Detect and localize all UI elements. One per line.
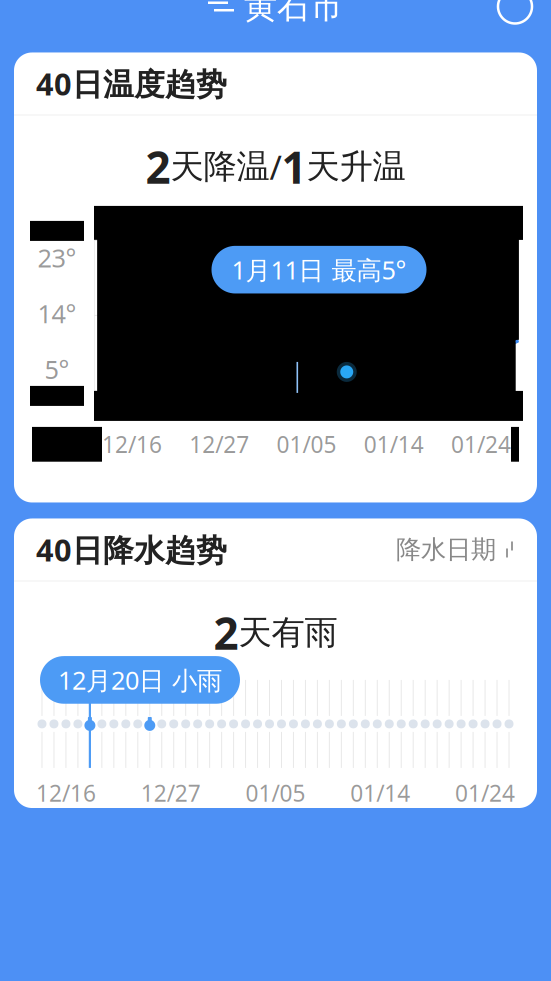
staticText: 40日降水趋势 bbox=[36, 529, 227, 570]
staticText: 12/16 bbox=[36, 778, 96, 808]
button[interactable]: 降水日期 bbox=[396, 528, 515, 571]
staticText: 12/27 bbox=[189, 429, 249, 459]
staticText: 2 bbox=[213, 603, 238, 662]
staticText: 40日温度趋势 bbox=[36, 63, 227, 104]
staticText: / bbox=[269, 145, 281, 189]
staticText: 23° bbox=[37, 241, 76, 274]
staticText: 14° bbox=[37, 297, 76, 330]
staticText: 12月20日 小雨 bbox=[58, 663, 222, 697]
staticText: 12/27 bbox=[141, 778, 201, 808]
staticText: 01/24 bbox=[451, 429, 511, 459]
staticText: 天升温 bbox=[306, 146, 405, 187]
staticText: 01/24 bbox=[455, 778, 515, 808]
staticText: 1月11日 最高5° bbox=[231, 253, 406, 286]
staticText: 黄石市 bbox=[244, 0, 343, 27]
staticText: 2 bbox=[145, 137, 170, 196]
staticText: 5° bbox=[44, 352, 69, 386]
button[interactable]: 刷新 bbox=[491, 0, 539, 30]
staticText: 天降温 bbox=[170, 146, 269, 187]
staticText: 天有雨 bbox=[238, 612, 337, 653]
staticText: 01/05 bbox=[276, 429, 336, 459]
staticText: 降水日期 bbox=[396, 534, 496, 565]
staticText: 01/14 bbox=[364, 429, 424, 459]
staticText: 01/05 bbox=[245, 778, 305, 808]
staticText: 12/16 bbox=[102, 429, 162, 459]
button[interactable]: 黄石市 bbox=[200, 0, 351, 33]
staticText: 1 bbox=[281, 137, 306, 196]
staticText: 01/14 bbox=[350, 778, 410, 808]
